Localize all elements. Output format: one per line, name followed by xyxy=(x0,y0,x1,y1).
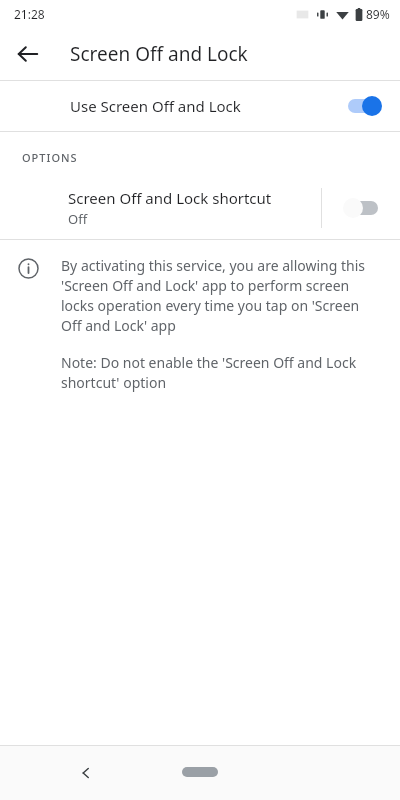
button[interactable]: Home xyxy=(182,767,218,777)
staticText: Use Screen Off and Lock xyxy=(70,96,346,116)
button[interactable]: Back xyxy=(66,753,106,793)
button[interactable]: Screen Off and Lock shortcut xyxy=(0,188,321,228)
button[interactable]: Back xyxy=(6,32,50,76)
staticText: OPTIONS xyxy=(22,150,78,165)
staticText: 21:28 xyxy=(14,6,45,22)
staticText: Note: Do not enable the 'Screen Off and … xyxy=(61,353,372,392)
staticText: Off xyxy=(68,210,88,228)
staticText: 89% xyxy=(366,6,390,22)
button[interactable]: Screen Off and Lock shortcut toggle xyxy=(322,181,400,235)
staticText: By activating this service, you are allo… xyxy=(61,256,372,335)
button[interactable]: Use Screen Off and Lock xyxy=(0,81,400,131)
staticText: Screen Off and Lock xyxy=(70,41,248,67)
staticText: Screen Off and Lock shortcut xyxy=(68,188,272,208)
